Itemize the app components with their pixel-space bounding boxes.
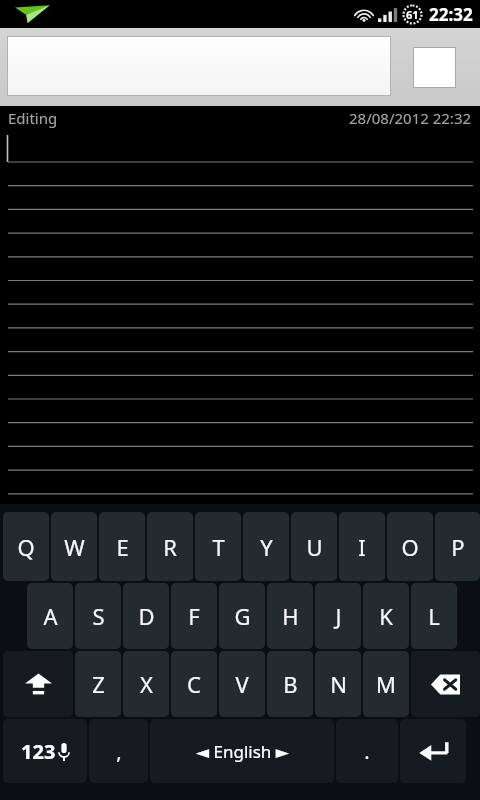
- button[interactable]: E: [99, 512, 145, 581]
- button[interactable]: B: [267, 651, 313, 717]
- button[interactable]: R: [147, 512, 193, 581]
- staticText: T: [212, 532, 225, 562]
- button[interactable]: Shift: [3, 651, 73, 717]
- button[interactable]: H: [267, 583, 313, 649]
- staticText: L: [428, 601, 440, 631]
- staticText: A: [43, 601, 58, 631]
- button[interactable]: C: [171, 651, 217, 717]
- button[interactable]: Z: [75, 651, 121, 717]
- button[interactable]: I: [339, 512, 385, 581]
- staticText: H: [282, 601, 299, 631]
- staticText: 22:32: [429, 3, 473, 26]
- staticText: ,: [116, 738, 122, 765]
- button[interactable]: Space, English: [150, 719, 334, 783]
- button[interactable]: M: [363, 651, 409, 717]
- button[interactable]: Numbers and voice input: [3, 719, 87, 783]
- staticText: X: [140, 669, 153, 699]
- button[interactable]: .: [336, 719, 398, 783]
- button[interactable]: Note title field: [7, 36, 391, 96]
- staticText: Z: [92, 669, 105, 699]
- staticText: R: [163, 532, 177, 562]
- button[interactable]: U: [291, 512, 337, 581]
- staticText: U: [306, 532, 323, 562]
- staticText: C: [187, 669, 201, 699]
- button[interactable]: X: [123, 651, 169, 717]
- staticText: 61: [406, 7, 419, 22]
- staticText: D: [138, 601, 155, 631]
- staticText: Q: [17, 532, 35, 562]
- button[interactable]: W: [51, 512, 97, 581]
- button[interactable]: L: [411, 583, 457, 649]
- staticText: P: [451, 532, 465, 562]
- button[interactable]: T: [195, 512, 241, 581]
- button[interactable]: K: [363, 583, 409, 649]
- button[interactable]: F: [171, 583, 217, 649]
- button[interactable]: Q: [3, 512, 49, 581]
- button[interactable]: New note: [413, 47, 456, 88]
- staticText: O: [401, 532, 419, 562]
- button[interactable]: G: [219, 583, 265, 649]
- button[interactable]: [0, 130, 480, 504]
- button[interactable]: Enter: [400, 719, 466, 783]
- button[interactable]: P: [435, 512, 480, 581]
- button[interactable]: V: [219, 651, 265, 717]
- staticText: N: [330, 669, 347, 699]
- button[interactable]: S: [75, 583, 121, 649]
- staticText: E: [116, 532, 129, 562]
- button[interactable]: ,: [89, 719, 148, 783]
- staticText: 123: [21, 738, 56, 765]
- staticText: Editing: [8, 108, 58, 128]
- button[interactable]: A: [27, 583, 73, 649]
- staticText: W: [64, 532, 85, 562]
- staticText: I: [358, 532, 366, 562]
- button[interactable]: Backspace: [411, 651, 480, 717]
- staticText: ◄ English ►: [196, 740, 289, 763]
- staticText: .: [364, 738, 370, 765]
- staticText: F: [188, 601, 200, 631]
- staticText: K: [379, 601, 393, 631]
- button[interactable]: Y: [243, 512, 289, 581]
- button[interactable]: J: [315, 583, 361, 649]
- button[interactable]: N: [315, 651, 361, 717]
- staticText: B: [283, 669, 298, 699]
- staticText: J: [335, 601, 342, 631]
- staticText: G: [234, 601, 251, 631]
- staticText: 28/08/2012 22:32: [349, 108, 472, 128]
- staticText: M: [376, 669, 396, 699]
- button[interactable]: D: [123, 583, 169, 649]
- staticText: S: [92, 601, 105, 631]
- staticText: Y: [260, 532, 273, 562]
- button[interactable]: O: [387, 512, 433, 581]
- staticText: V: [235, 669, 249, 699]
